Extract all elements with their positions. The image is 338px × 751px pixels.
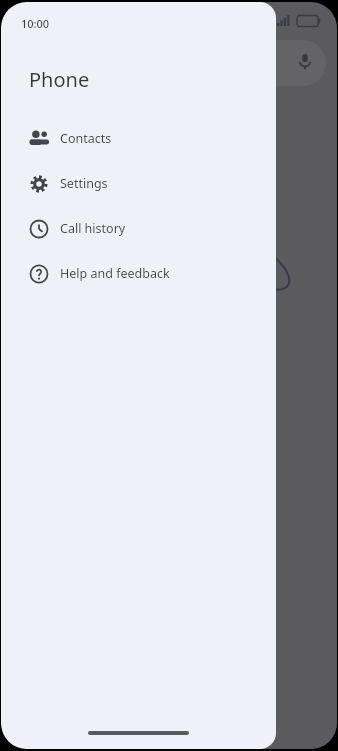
staticText: Help and feedback <box>60 265 170 282</box>
staticText: Phone <box>29 66 90 93</box>
button[interactable]: Contacts <box>1 116 276 161</box>
button[interactable]: Help and feedback <box>1 251 276 296</box>
button[interactable]: Call history <box>1 206 276 251</box>
button[interactable]: Search <box>151 40 326 86</box>
staticText: Call history <box>60 220 126 237</box>
button[interactable]: Voice search <box>295 52 315 72</box>
staticText: 10:00 <box>21 16 50 31</box>
staticText: Contacts <box>60 130 112 147</box>
staticText: Settings <box>60 175 108 192</box>
button[interactable]: Settings <box>1 161 276 206</box>
